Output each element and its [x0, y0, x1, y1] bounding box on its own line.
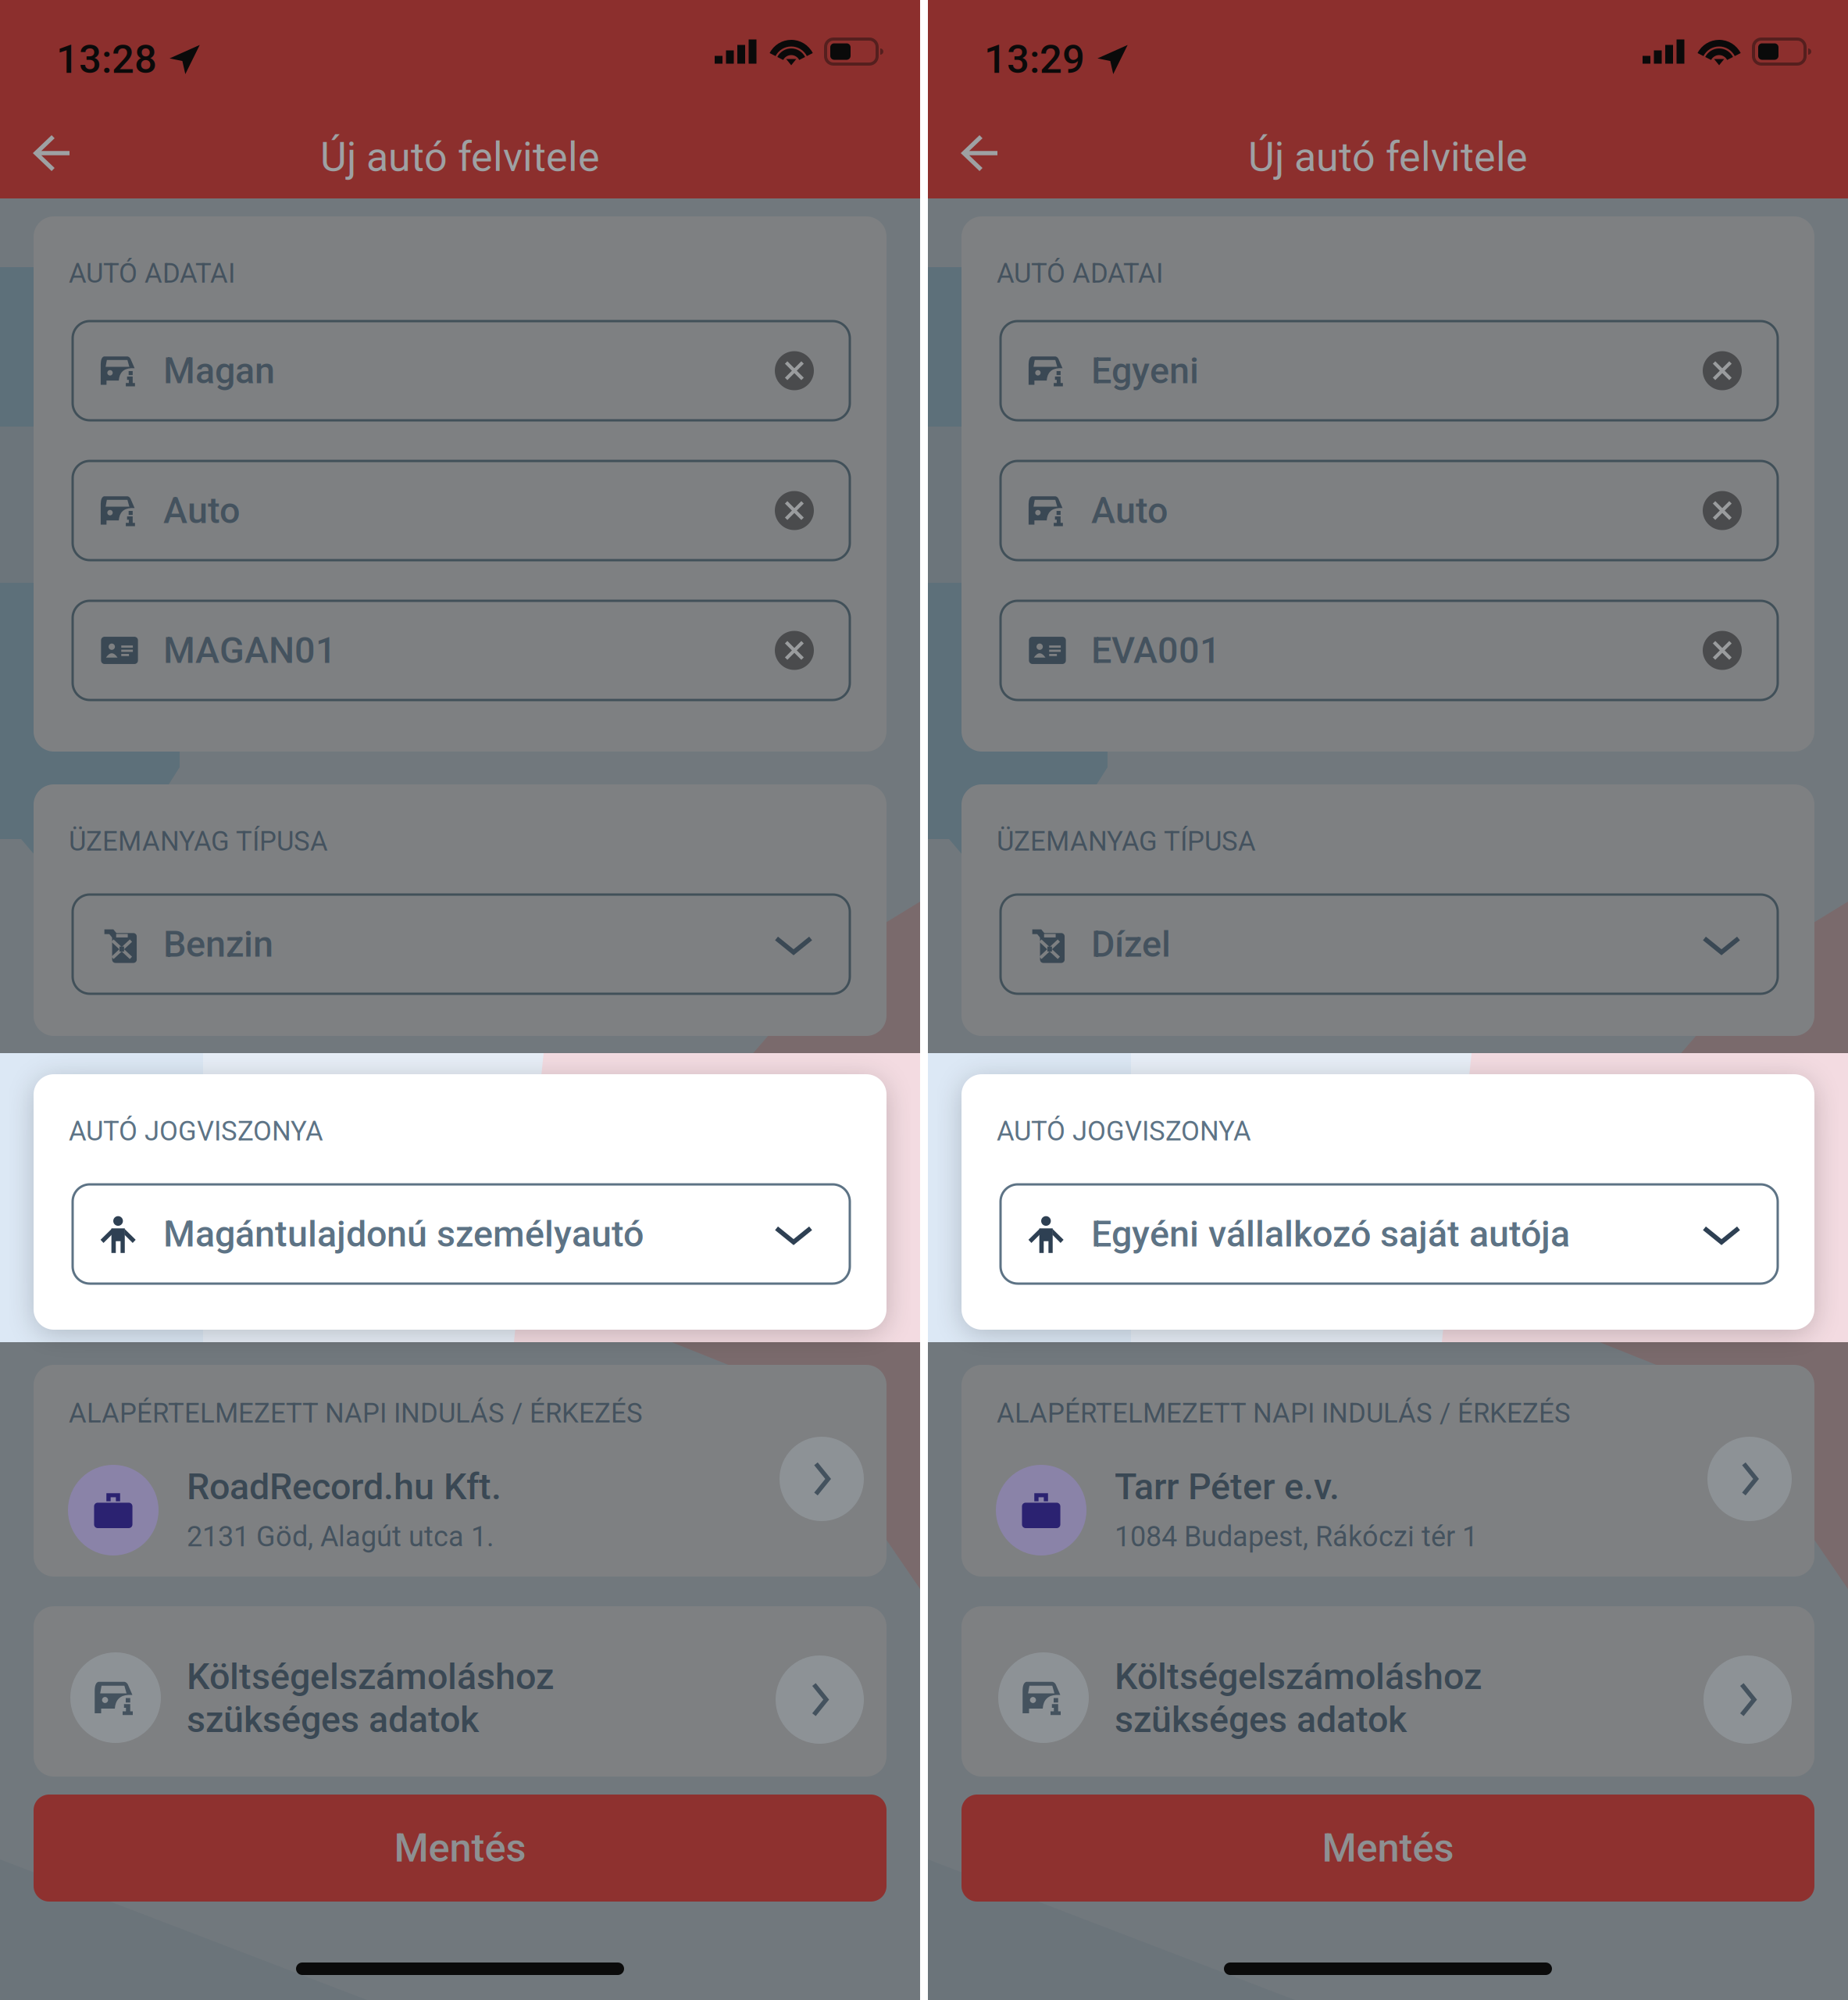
staticText: AUTÓ ADATAI [69, 258, 235, 289]
staticText: EVA001 [1091, 629, 1221, 672]
staticText: Dízel [1091, 923, 1171, 966]
button[interactable]: Költségelszámoláshoz [961, 1606, 1814, 1777]
button[interactable]: Back [934, 116, 1028, 191]
button[interactable]: Mentés [34, 1795, 887, 1902]
button[interactable]: Dízel [1001, 895, 1778, 994]
staticText: Auto [163, 489, 240, 532]
staticText: AUTÓ JOGVISZONYA [69, 1115, 323, 1147]
staticText: AUTÓ JOGVISZONYA [69, 1115, 323, 1147]
staticText: MAGAN01 [163, 629, 337, 672]
staticText: 1084 Budapest, Rákóczi tér 1 [1115, 1520, 1478, 1553]
staticText: Új autó felvitele [320, 133, 600, 181]
staticText: Költségelszámoláshoz [1115, 1655, 1482, 1698]
staticText: ÜZEMANYAG TÍPUSA [69, 826, 328, 857]
staticText: Magan [163, 349, 275, 392]
staticText: AUTÓ JOGVISZONYA [997, 1115, 1251, 1147]
button[interactable]: Magan [73, 321, 850, 420]
button[interactable]: Tarr Péter e.v. [961, 1365, 1814, 1577]
staticText: ALAPÉRTELMEZETT NAPI INDULÁS / ÉRKEZÉS [69, 1397, 643, 1429]
staticText: Mentés [394, 1825, 526, 1871]
staticText: Tarr Péter e.v. [1115, 1465, 1340, 1508]
button[interactable]: Magántulajdonú személyautó [73, 1184, 850, 1284]
staticText: Egyéni vállalkozó saját autója [1091, 1213, 1570, 1255]
button[interactable]: Back [6, 116, 100, 191]
staticText: Egyéni vállalkozó saját autója [1091, 1213, 1570, 1255]
button[interactable]: Magántulajdonú személyautó [73, 1184, 850, 1284]
staticText: Magántulajdonú személyautó [163, 1213, 644, 1255]
staticText: Auto [1091, 489, 1168, 532]
staticText: 13:28 [56, 36, 157, 83]
staticText: RoadRecord.hu Kft. [187, 1465, 501, 1508]
button[interactable]: EVA001 [1001, 601, 1778, 700]
staticText: 2131 Göd, Alagút utca 1. [187, 1520, 494, 1553]
button[interactable]: Auto [1001, 461, 1778, 560]
staticText: AUTÓ JOGVISZONYA [997, 1115, 1251, 1147]
button[interactable]: Egyeni [1001, 321, 1778, 420]
staticText: Új autó felvitele [1248, 133, 1528, 181]
staticText: szükséges adatok [1115, 1698, 1407, 1741]
staticText: Mentés [1322, 1825, 1454, 1871]
button[interactable]: RoadRecord.hu Kft. [34, 1365, 887, 1577]
staticText: szükséges adatok [187, 1698, 479, 1741]
staticText: ALAPÉRTELMEZETT NAPI INDULÁS / ÉRKEZÉS [997, 1397, 1571, 1429]
staticText: Egyeni [1091, 349, 1199, 392]
button[interactable]: MAGAN01 [73, 601, 850, 700]
staticText: ÜZEMANYAG TÍPUSA [997, 826, 1256, 857]
button[interactable]: Auto [73, 461, 850, 560]
staticText: Költségelszámoláshoz [187, 1655, 554, 1698]
staticText: Benzin [163, 923, 273, 966]
staticText: 13:29 [984, 36, 1085, 83]
button[interactable]: Egyéni vállalkozó saját autója [1001, 1184, 1778, 1284]
button[interactable]: Egyéni vállalkozó saját autója [1001, 1184, 1778, 1284]
staticText: Magántulajdonú személyautó [163, 1213, 644, 1255]
staticText: AUTÓ ADATAI [997, 258, 1163, 289]
button[interactable]: Költségelszámoláshoz [34, 1606, 887, 1777]
button[interactable]: Benzin [73, 895, 850, 994]
button[interactable]: Mentés [961, 1795, 1814, 1902]
